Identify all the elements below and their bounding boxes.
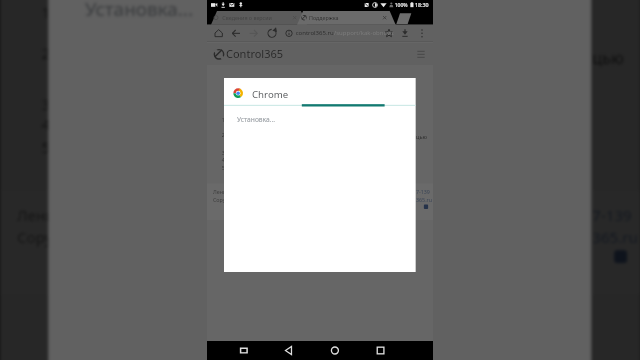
staticText: 5	[222, 164, 225, 172]
staticText: 7-139	[416, 188, 430, 196]
staticText: control365.ru	[296, 29, 334, 37]
staticText: 4	[222, 156, 225, 164]
staticText: 5	[42, 137, 51, 157]
staticText: 18:30	[415, 1, 429, 8]
staticText: Лени	[17, 205, 55, 225]
button[interactable]: Recent apps	[377, 341, 433, 360]
staticText: Поддержка	[309, 14, 339, 22]
button[interactable]: Back	[264, 341, 320, 360]
button[interactable]: Bookmark	[381, 25, 397, 42]
staticText: цью	[416, 133, 427, 140]
button[interactable]: Keyboard	[207, 341, 264, 360]
staticText: Установка...	[237, 115, 275, 124]
button[interactable]: More options	[414, 25, 430, 42]
staticText: /support/kak-obnovit	[334, 29, 394, 37]
staticText: 2	[42, 43, 51, 64]
staticText: Copyr	[17, 227, 59, 248]
button[interactable]: Reload	[264, 25, 282, 42]
button[interactable]: Home	[210, 25, 228, 42]
staticText: 4	[42, 114, 51, 135]
staticText: 1	[222, 117, 225, 124]
staticText: Сведения о версии	[222, 14, 272, 22]
staticText: Лени	[213, 188, 226, 196]
button[interactable]: Menu	[416, 46, 433, 62]
staticText: 3	[42, 94, 51, 115]
button[interactable]: Home	[320, 341, 377, 360]
staticText: Chrome	[252, 88, 288, 101]
staticText: Установка...	[85, 0, 194, 21]
button[interactable]: Back	[228, 25, 246, 42]
staticText: 365.ru	[592, 227, 639, 248]
button[interactable]: Tab Сведения о версии	[211, 10, 303, 25]
staticText: 100%	[395, 1, 408, 8]
staticText: Control365	[226, 47, 283, 62]
button[interactable]: New tab	[396, 10, 412, 25]
staticText: 2	[222, 131, 225, 139]
staticText: 1	[42, 2, 51, 22]
button[interactable]: Tab Поддержка	[303, 10, 396, 25]
staticText: 3	[222, 149, 225, 157]
button[interactable]: Downloads	[397, 25, 413, 42]
staticText: 7-139	[592, 205, 632, 225]
staticText: Copyr	[213, 196, 228, 204]
staticText: 365.ru	[416, 196, 432, 204]
staticText: цью	[592, 47, 624, 69]
